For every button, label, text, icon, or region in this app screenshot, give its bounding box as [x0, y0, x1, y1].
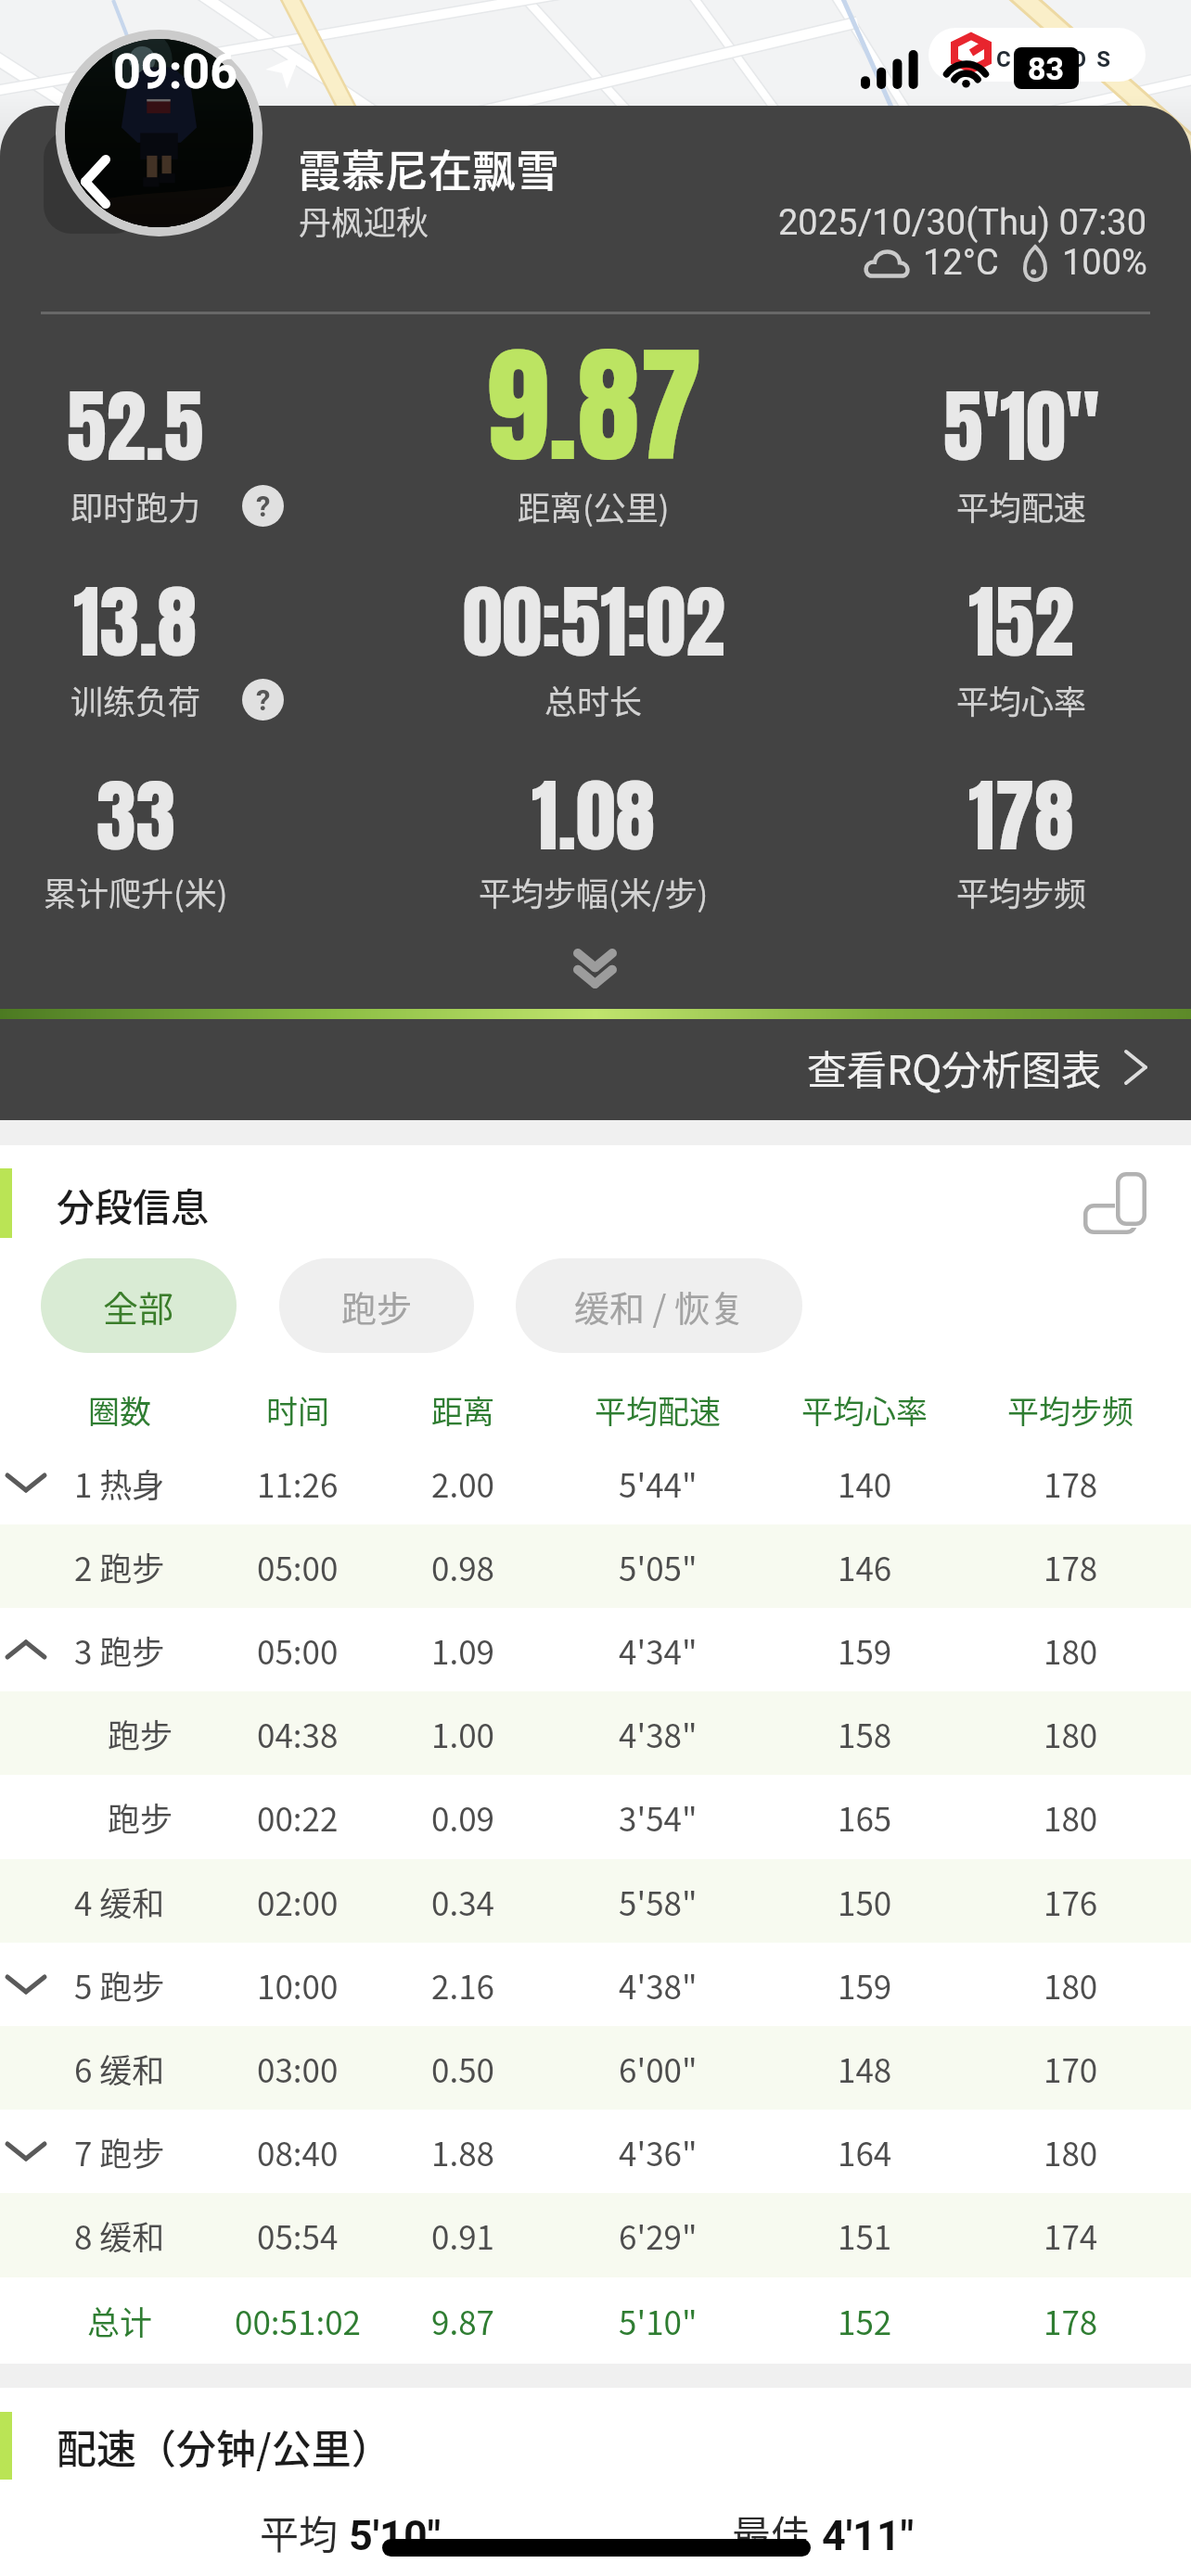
button[interactable]: 4 缓和 [0, 1859, 1191, 1943]
staticText: 平均配速 [595, 1387, 721, 1433]
staticText: 圈数 [88, 1387, 151, 1433]
staticText: 159 [838, 1961, 892, 2009]
staticText: 03:00 [257, 2045, 339, 2092]
staticText: 2025/10/30(Thu) 07:30 [778, 202, 1147, 244]
button[interactable]: 查看RQ分析图表 [0, 1019, 1191, 1120]
staticText: 158 [838, 1710, 892, 1757]
staticText: 11:26 [257, 1460, 339, 1507]
staticText: 分段信息 [57, 1177, 209, 1231]
button[interactable]: 8 缓和 [0, 2193, 1191, 2277]
staticText: 3'54" [619, 1793, 698, 1841]
staticText: 165 [838, 1793, 892, 1841]
staticText: 2.00 [431, 1460, 495, 1507]
staticText: 4'11" [822, 2511, 915, 2560]
staticText: 00:51:02 [463, 562, 725, 682]
staticText: 33 [96, 756, 175, 875]
staticText: 8 缓和 [74, 2212, 165, 2259]
staticText: 9.87 [486, 311, 702, 501]
staticText: 178 [1044, 2297, 1098, 2344]
staticText: 5'58" [619, 1878, 698, 1925]
staticText: 1.09 [431, 1626, 495, 1674]
staticText: 平均步频 [956, 868, 1087, 915]
staticText: 1.00 [431, 1710, 495, 1757]
staticText: COROS [996, 46, 1121, 72]
staticText: 180 [1044, 1793, 1098, 1841]
staticText: 13.8 [73, 562, 198, 682]
button[interactable]: 缓和 / 恢复 [516, 1258, 802, 1353]
button[interactable]: Activity photo [56, 30, 263, 236]
staticText: 00:22 [257, 1793, 339, 1841]
staticText: 0.50 [431, 2045, 495, 2092]
staticText: 180 [1044, 1710, 1098, 1757]
button[interactable]: 跑步 [279, 1258, 474, 1353]
staticText: 1.88 [431, 2128, 495, 2175]
staticText: 1.08 [531, 756, 656, 875]
button[interactable]: 总计 [0, 2277, 1191, 2364]
staticText: ? [256, 490, 271, 523]
staticText: 平均 [260, 2504, 339, 2560]
staticText: 5'10" [619, 2297, 698, 2344]
staticText: 4'36" [619, 2128, 698, 2175]
staticText: 2 跑步 [74, 1543, 165, 1590]
staticText: 180 [1044, 1961, 1098, 2009]
button[interactable]: 3 跑步 [0, 1608, 1191, 1691]
staticText: 0.34 [431, 1878, 495, 1925]
staticText: 跑步 [341, 1281, 413, 1332]
staticText: 平均配速 [956, 482, 1087, 529]
staticText: 1 热身 [74, 1460, 165, 1507]
staticText: 05:54 [257, 2212, 339, 2259]
staticText: 霞慕尼在飘雪 [298, 135, 559, 198]
staticText: 151 [838, 2212, 892, 2259]
staticText: 152 [968, 562, 1074, 682]
button[interactable]: Back [44, 130, 147, 234]
button[interactable]: 1 热身 [0, 1441, 1191, 1524]
staticText: 查看RQ分析图表 [807, 1039, 1102, 1096]
staticText: 0.98 [431, 1543, 495, 1590]
button[interactable]: More info [242, 679, 284, 721]
staticText: 总计 [87, 2297, 153, 2344]
button[interactable]: 跑步 [0, 1775, 1191, 1859]
button[interactable]: 2 跑步 [0, 1524, 1191, 1608]
staticText: 0.91 [431, 2212, 495, 2259]
staticText: 4 缓和 [74, 1878, 165, 1925]
staticText: 178 [1044, 1543, 1098, 1590]
staticText: 跑步 [108, 1710, 173, 1757]
staticText: 178 [968, 756, 1074, 875]
button[interactable]: 7 跑步 [0, 2110, 1191, 2193]
staticText: 02:00 [257, 1878, 339, 1925]
staticText: 7 跑步 [74, 2128, 165, 2175]
staticText: 总时长 [544, 676, 643, 723]
staticText: 150 [838, 1878, 892, 1925]
staticText: 146 [838, 1543, 892, 1590]
staticText: 即时跑力 [70, 482, 201, 529]
staticText: 跑步 [108, 1793, 173, 1841]
button[interactable]: 全部 [41, 1258, 237, 1353]
button[interactable]: 5 跑步 [0, 1943, 1191, 2026]
button[interactable]: Rotate to landscape [1069, 1156, 1161, 1249]
staticText: 83 [1028, 50, 1065, 87]
staticText: 00:51:02 [235, 2297, 362, 2344]
button[interactable]: 6 缓和 [0, 2026, 1191, 2110]
staticText: 丹枫迎秋 [299, 197, 429, 244]
staticText: 6 缓和 [74, 2045, 165, 2092]
staticText: 2.16 [431, 1961, 495, 2009]
staticText: 5'10" [349, 2511, 442, 2560]
staticText: 3 跑步 [74, 1626, 165, 1674]
staticText: 4'38" [619, 1961, 698, 2009]
staticText: 159 [838, 1626, 892, 1674]
button[interactable]: 跑步 [0, 1691, 1191, 1775]
staticText: 164 [838, 2128, 892, 2175]
staticText: 4'38" [619, 1710, 698, 1757]
staticText: 5 跑步 [74, 1961, 165, 2009]
staticText: 178 [1044, 1460, 1098, 1507]
staticText: 训练负荷 [70, 676, 201, 723]
staticText: 100% [1062, 242, 1147, 284]
staticText: 08:40 [257, 2128, 339, 2175]
staticText: 平均心率 [801, 1387, 928, 1433]
staticText: 累计爬升(米) [44, 868, 228, 915]
staticText: 距离 [431, 1387, 494, 1433]
staticText: 180 [1044, 2128, 1098, 2175]
staticText: 平均步幅(米/步) [479, 868, 709, 915]
staticText: 148 [838, 2045, 892, 2092]
button[interactable]: More info [242, 485, 284, 527]
